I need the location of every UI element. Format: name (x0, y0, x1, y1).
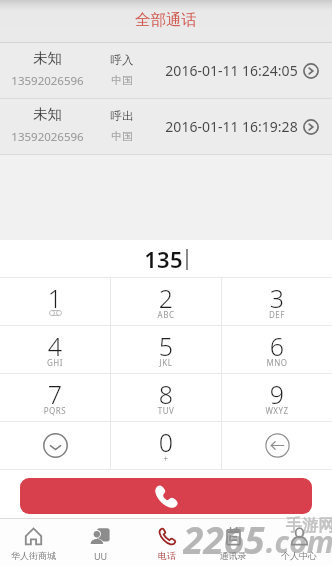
staticText: 电话 (134, 550, 200, 561)
staticText: 5 (111, 329, 221, 363)
button[interactable]: 未知 (0, 43, 332, 98)
staticText: JKL (111, 357, 221, 368)
staticText: 0 (111, 425, 221, 459)
staticText: MNO (222, 357, 332, 368)
button[interactable]: 4 (0, 326, 110, 373)
staticText: 9 (222, 377, 332, 411)
button[interactable]: 收起拨号键盘 (0, 422, 110, 469)
staticText: PQRS (0, 405, 110, 416)
staticText: 2016-01-11 16:19:28 (165, 117, 298, 136)
other: 收起拨号键盘 (43, 433, 68, 458)
staticText: WXYZ (222, 405, 332, 416)
button[interactable]: 未知 (0, 99, 332, 154)
staticText: 2 (111, 281, 221, 315)
staticText: 7 (0, 377, 110, 411)
staticText: 中国 (99, 130, 145, 143)
button[interactable]: 拨打电话 (20, 478, 312, 514)
staticText: 13592026596 (0, 73, 95, 89)
staticText: 135 (144, 244, 183, 274)
staticText: 呼入 (99, 53, 145, 67)
staticText: ABC (111, 309, 221, 320)
staticText: 中国 (99, 74, 145, 87)
staticText: .com (266, 521, 332, 562)
staticText: 呼出 (99, 109, 145, 123)
staticText: 通讯录 (200, 550, 266, 561)
button[interactable]: 3 (222, 278, 332, 325)
staticText: 3 (222, 281, 332, 315)
button[interactable]: 8 (111, 374, 221, 421)
button[interactable]: 5 (111, 326, 221, 373)
button[interactable]: 2 (111, 278, 221, 325)
staticText: 全部通话 (135, 10, 197, 30)
staticText: GHI (0, 357, 110, 368)
staticText: DEF (222, 309, 332, 320)
staticText: 6 (222, 329, 332, 363)
button[interactable]: 删除 (222, 422, 332, 469)
other: 删除 (265, 433, 290, 458)
button[interactable]: 6 (222, 326, 332, 373)
staticText: 个人中心 (266, 550, 332, 561)
button[interactable]: 1 (0, 278, 110, 325)
button[interactable]: 9 (222, 374, 332, 421)
button[interactable]: 华人街商城 (0, 519, 67, 566)
button[interactable]: 0 (111, 422, 221, 469)
button[interactable]: 个人中心 (266, 519, 332, 566)
button[interactable]: 电话 (134, 519, 200, 566)
staticText: 1 (0, 281, 110, 315)
button[interactable]: 通讯录 (200, 519, 266, 566)
staticText: 未知 (0, 105, 95, 123)
button[interactable]: 7 (0, 374, 110, 421)
staticText: 手游网 (286, 516, 332, 536)
staticText: 华人街商城 (0, 550, 67, 561)
button[interactable]: UU (67, 519, 134, 566)
staticText: 8 (111, 377, 221, 411)
staticText: 2265 (183, 514, 265, 561)
staticText: 2016-01-11 16:24:05 (165, 61, 298, 80)
staticText: 13592026596 (0, 129, 95, 145)
staticText: UU (67, 550, 134, 562)
staticText: 未知 (0, 49, 95, 67)
staticText: + (111, 453, 221, 464)
staticText: 4 (0, 329, 110, 363)
staticText: TUV (111, 405, 221, 416)
